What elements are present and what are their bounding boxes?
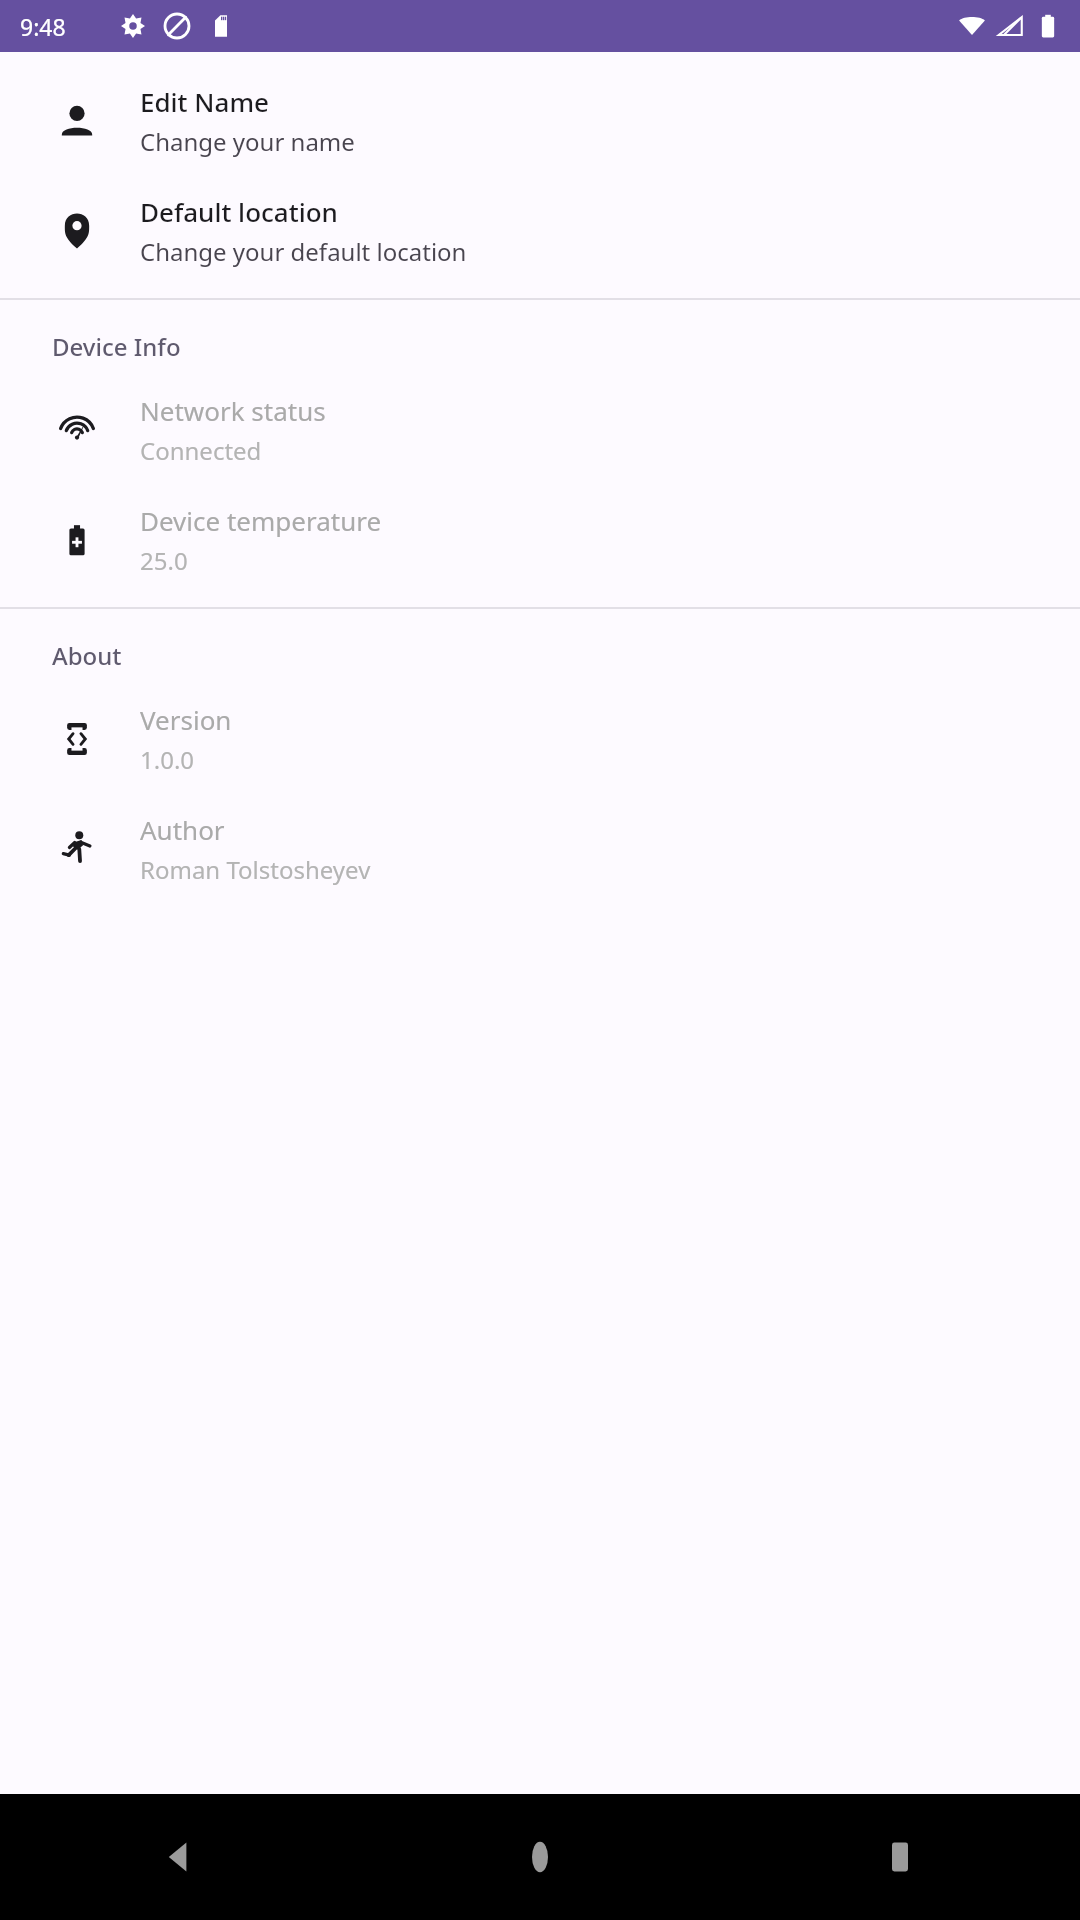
staticText: 1.0.0: [140, 743, 195, 776]
other: Location: [14, 212, 140, 250]
other: Battery: [14, 521, 140, 559]
button[interactable]: Network: [0, 375, 1080, 485]
staticText: Change your default location: [140, 235, 467, 268]
staticText: Roman Tolstosheyev: [140, 853, 371, 886]
other: Developer mode: [14, 720, 140, 758]
staticText: Device Info: [52, 330, 181, 363]
staticText: Connected: [140, 434, 262, 467]
other: Run: [14, 830, 140, 868]
button[interactable]: Battery: [0, 485, 1080, 595]
staticText: Author: [140, 812, 225, 847]
staticText: Change your name: [140, 125, 355, 158]
other: Person: [14, 102, 140, 140]
button[interactable]: Run: [0, 794, 1080, 904]
staticText: Device temperature: [140, 503, 382, 538]
staticText: Default location: [140, 194, 338, 229]
staticText: About: [52, 639, 122, 672]
button[interactable]: Recents: [720, 1794, 1080, 1920]
staticText: 9:48: [20, 11, 66, 42]
button[interactable]: Location: [0, 176, 1080, 286]
button[interactable]: Person: [0, 66, 1080, 176]
button[interactable]: Back: [0, 1794, 360, 1920]
staticText: 25.0: [140, 544, 188, 577]
button[interactable]: Developer mode: [0, 684, 1080, 794]
other: Network: [14, 411, 140, 449]
staticText: Network status: [140, 393, 326, 428]
button[interactable]: Home: [360, 1794, 720, 1920]
staticText: Version: [140, 702, 232, 737]
staticText: Edit Name: [140, 84, 269, 119]
